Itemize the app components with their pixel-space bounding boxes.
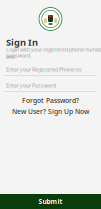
button[interactable]: Submit bbox=[0, 194, 101, 209]
staticText: Enter your Password bbox=[6, 82, 56, 89]
staticText: Enter your Registered Phone no. bbox=[6, 66, 82, 73]
staticText: New User? Sign Up Now bbox=[12, 107, 89, 116]
staticText: Forgot Password? bbox=[22, 96, 79, 105]
staticText: Submit bbox=[38, 197, 62, 206]
button[interactable]: Forgot Password? bbox=[0, 96, 101, 105]
staticText: Login with your registered phone number … bbox=[6, 46, 101, 60]
staticText: Sign In bbox=[6, 36, 38, 48]
button[interactable]: New User? Sign Up Now bbox=[0, 107, 101, 116]
staticText: password. bbox=[6, 52, 31, 59]
